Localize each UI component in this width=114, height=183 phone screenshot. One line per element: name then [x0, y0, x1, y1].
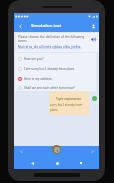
staticText: sorry but I already have plans. Mui rel … [50, 103, 88, 113]
staticText: Here is my address. [24, 77, 53, 81]
button[interactable]: Play audio [89, 35, 98, 44]
staticText: Shall we see each other tomorrow? [24, 86, 75, 90]
staticText: How are you? [24, 57, 44, 61]
button[interactable]: Recents [75, 157, 87, 169]
button[interactable]: Account [87, 20, 99, 32]
button[interactable]: Shall we see each other tomorrow? [15, 84, 96, 91]
staticText: Simulation test [31, 23, 62, 29]
button[interactable]: I am sorry but I already have plans [15, 64, 96, 74]
button[interactable]: Home [51, 157, 63, 169]
staticText: Please choose the definition of the foll… [18, 35, 89, 43]
button[interactable]: Back [14, 20, 26, 32]
button[interactable]: Hint [92, 96, 97, 101]
button[interactable]: Record [52, 145, 61, 154]
button[interactable]: Here is my address. [15, 74, 96, 84]
staticText: Topic explanation [56, 97, 82, 101]
staticText: I am sorry but I already have plans [24, 67, 75, 71]
button[interactable]: Back [26, 157, 38, 169]
button[interactable]: Next [85, 146, 99, 157]
button[interactable]: How are you? [15, 54, 96, 64]
staticText: Mui rel ta, ale ull mdre vyblau nliku ji… [18, 45, 82, 49]
button[interactable]: Previous [14, 146, 28, 157]
